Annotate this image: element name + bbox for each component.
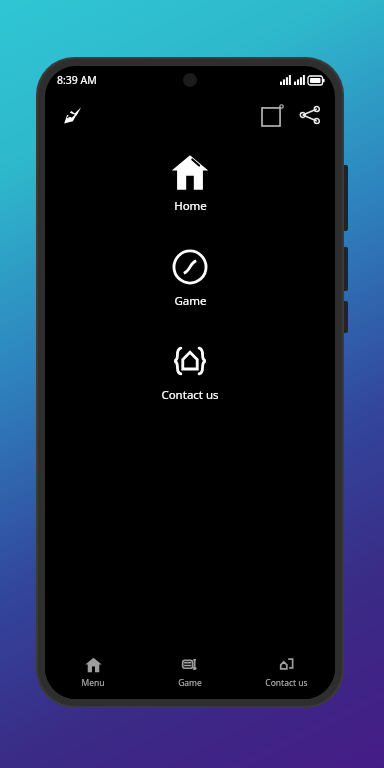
button[interactable]: Home bbox=[120, 151, 260, 216]
staticText: Home bbox=[174, 198, 207, 214]
staticText: Contact us bbox=[265, 677, 308, 689]
staticText: 8:39 AM bbox=[57, 73, 97, 87]
button[interactable]: Game bbox=[141, 645, 238, 699]
button[interactable]: Contact us bbox=[238, 645, 335, 699]
button[interactable]: Contact us bbox=[120, 340, 260, 405]
staticText: Game bbox=[174, 293, 207, 309]
button[interactable]: Game bbox=[120, 246, 260, 311]
staticText: Menu bbox=[81, 677, 105, 689]
button[interactable]: App logo bbox=[55, 98, 89, 132]
button[interactable]: Recent apps bbox=[253, 96, 291, 134]
staticText: Game bbox=[178, 677, 202, 689]
button[interactable]: Share bbox=[291, 96, 329, 134]
button[interactable]: Menu bbox=[45, 645, 141, 699]
staticText: Contact us bbox=[161, 387, 219, 403]
